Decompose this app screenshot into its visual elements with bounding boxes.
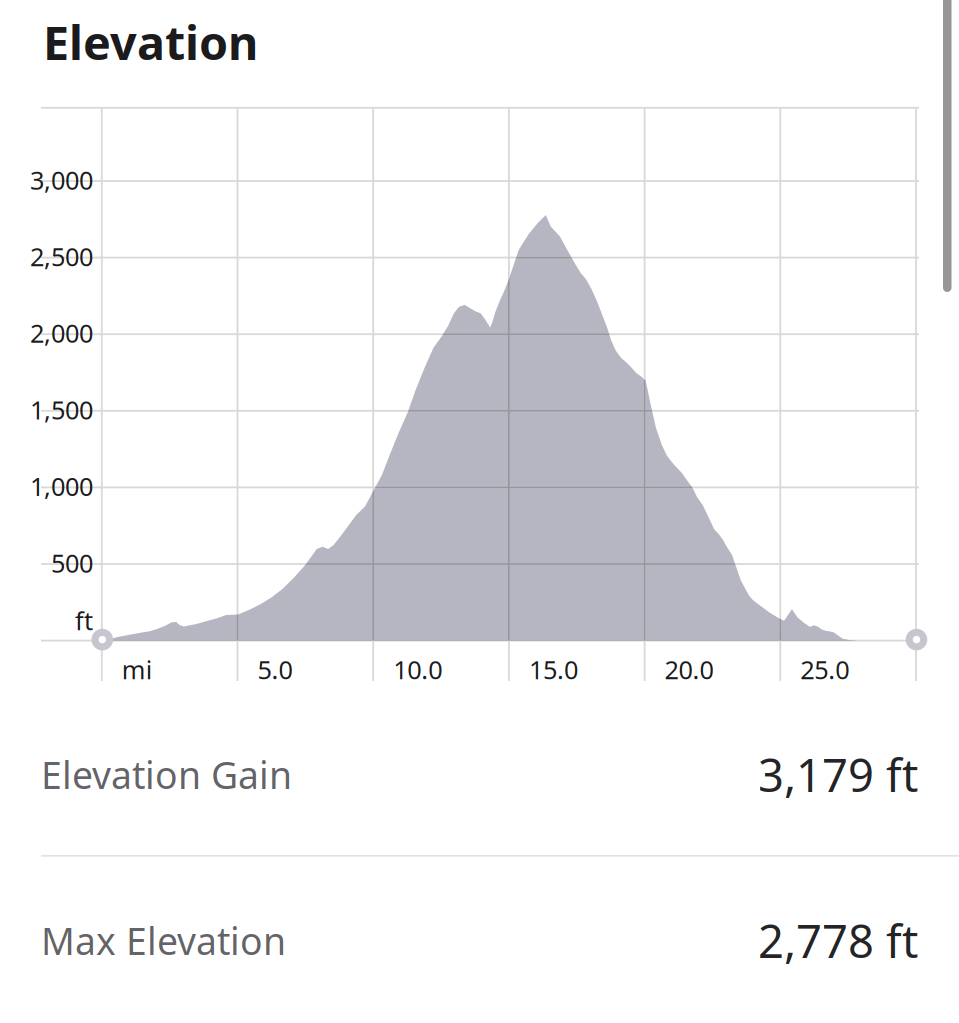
staticText: 25.0 xyxy=(800,653,849,686)
staticText: ft xyxy=(75,604,93,637)
staticText: Elevation xyxy=(43,11,258,73)
button[interactable]: Elevation Gain xyxy=(41,698,918,851)
staticText: 10.0 xyxy=(393,653,442,686)
staticText: 2,500 xyxy=(30,240,93,273)
staticText: 1,500 xyxy=(30,393,93,426)
staticText: 20.0 xyxy=(665,653,714,686)
staticText: 3,179 ft xyxy=(758,744,918,805)
staticText: 1,000 xyxy=(30,469,93,503)
button[interactable]: Max Elevation xyxy=(41,864,918,1017)
staticText: 15.0 xyxy=(529,653,578,686)
staticText: 3,000 xyxy=(30,163,93,197)
staticText: 2,000 xyxy=(30,316,93,350)
staticText: 2,778 ft xyxy=(758,910,918,971)
staticText: Max Elevation xyxy=(41,916,286,965)
staticText: 500 xyxy=(51,546,93,580)
staticText: mi xyxy=(122,653,153,686)
staticText: Elevation Gain xyxy=(41,750,292,799)
staticText: 5.0 xyxy=(257,653,292,686)
